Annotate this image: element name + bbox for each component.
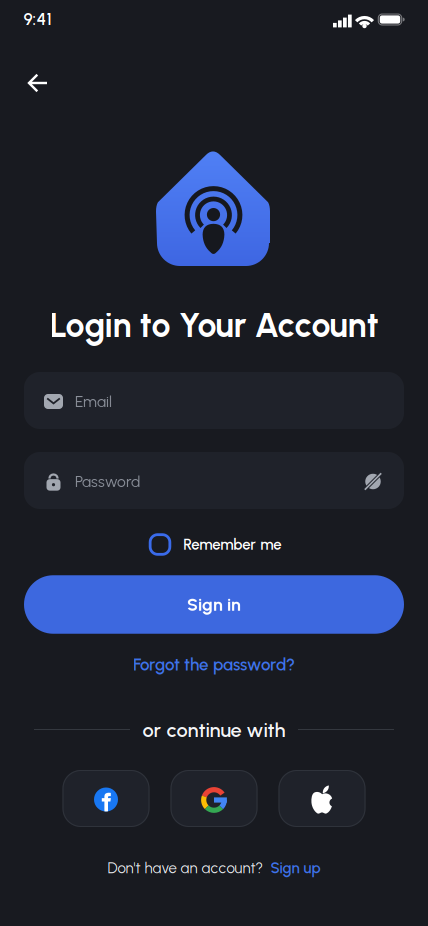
staticText: 9:41	[23, 9, 51, 29]
button[interactable]: Password	[24, 452, 404, 509]
staticText: Don't have an account?	[107, 859, 263, 877]
staticText: Login to Your Account	[49, 305, 378, 345]
staticText: Sign in	[187, 594, 241, 615]
button[interactable]: Sign in	[24, 575, 404, 634]
button[interactable]: Forgot the password?	[133, 654, 295, 675]
button[interactable]: Email	[24, 372, 404, 429]
staticText: Sign up	[270, 859, 320, 877]
staticText: or continue with	[142, 718, 285, 742]
button[interactable]	[62, 770, 149, 827]
button[interactable]	[170, 770, 257, 827]
button[interactable]: Remember me	[149, 533, 281, 556]
button[interactable]: Sign up	[270, 859, 320, 877]
button[interactable]	[278, 770, 365, 827]
staticText: Forgot the password?	[133, 654, 295, 675]
staticText: Email	[75, 392, 112, 411]
button[interactable]	[16, 61, 60, 105]
staticText: Remember me	[183, 535, 281, 553]
staticText: Password	[75, 472, 140, 491]
